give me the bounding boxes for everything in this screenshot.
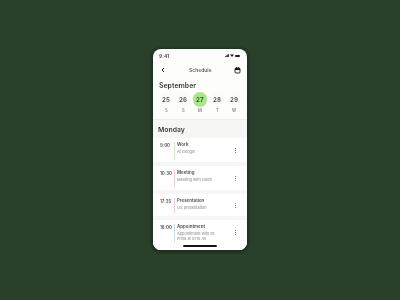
staticText: Monday: [158, 125, 185, 133]
staticText: Work: [177, 142, 189, 147]
staticText: At Google: [177, 149, 196, 154]
staticText: T: [216, 108, 219, 113]
staticText: S: [182, 108, 185, 113]
staticText: 27: [196, 96, 204, 104]
staticText: 25: [162, 96, 170, 104]
staticText: Appointment: [177, 224, 206, 229]
button[interactable]: 10:30: [153, 166, 247, 190]
button[interactable]: 9:00: [153, 138, 247, 162]
button[interactable]: Back: [157, 62, 168, 77]
button[interactable]: 25: [159, 92, 173, 113]
button[interactable]: 29: [227, 92, 241, 113]
staticText: September: [159, 81, 197, 89]
staticText: Meeting with client: [177, 177, 212, 182]
button[interactable]: More options: [231, 174, 240, 183]
staticText: 29: [230, 96, 238, 104]
staticText: 28: [213, 96, 221, 104]
staticText: Presentation: [177, 198, 205, 203]
staticText: Meeting: [177, 170, 195, 175]
staticText: M: [198, 108, 202, 113]
staticText: 18:00: [160, 225, 173, 230]
staticText: 17:35: [160, 199, 173, 204]
staticText: 10:30: [160, 171, 173, 176]
button[interactable]: More options: [231, 201, 240, 210]
button[interactable]: 26: [176, 92, 190, 113]
staticText: Schedule: [189, 67, 212, 73]
button[interactable]: 17:35: [153, 194, 247, 216]
staticText: UX presentation: [177, 205, 207, 210]
button[interactable]: 18:00: [153, 220, 247, 245]
button[interactable]: Calendar: [232, 62, 243, 77]
staticText: S: [165, 108, 168, 113]
button[interactable]: 28: [210, 92, 224, 113]
staticText: Appointment with Dr. Priva at 5715 Av: [177, 231, 216, 241]
staticText: W: [232, 108, 237, 113]
staticText: 9:00: [160, 143, 173, 148]
button[interactable]: More options: [231, 228, 240, 237]
staticText: 26: [179, 96, 187, 104]
button[interactable]: 27: [193, 92, 207, 113]
button[interactable]: More options: [231, 146, 240, 155]
staticText: 9:41: [159, 53, 170, 59]
